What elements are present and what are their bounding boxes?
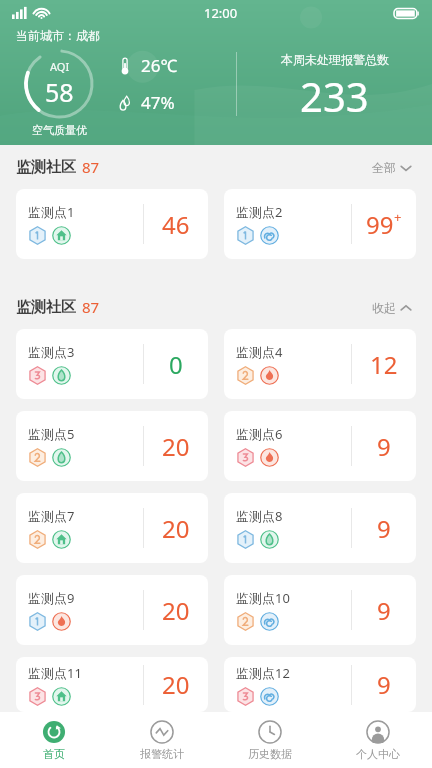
staticText: 12 <box>370 348 398 381</box>
staticText: 20 <box>162 668 190 701</box>
button[interactable]: 全部 <box>368 156 416 179</box>
button[interactable]: 个人中心 <box>324 712 432 768</box>
staticText: 20 <box>162 430 190 463</box>
staticText: + <box>394 208 402 226</box>
staticText: 20 <box>162 594 190 627</box>
button[interactable]: 监测点1 <box>16 189 208 259</box>
staticText: 监测点2 <box>236 203 283 221</box>
button[interactable]: 监测点6 <box>224 411 416 481</box>
button[interactable]: 报警统计 <box>108 712 216 768</box>
staticText: 47% <box>141 91 175 114</box>
staticText: 监测社区 <box>16 298 76 317</box>
button[interactable]: 监测点11 <box>16 657 208 712</box>
button[interactable]: 监测点5 <box>16 411 208 481</box>
staticText: 233 <box>300 69 369 123</box>
staticText: 9 <box>377 512 391 545</box>
staticText: 收起 <box>372 300 396 315</box>
staticText: 监测社区 <box>16 158 76 177</box>
staticText: 监测点12 <box>236 664 290 682</box>
staticText: 监测点7 <box>28 507 75 525</box>
staticText: 报警统计 <box>140 747 184 761</box>
button[interactable]: 监测点3 <box>16 329 208 399</box>
staticText: 全部 <box>372 160 396 175</box>
staticText: 监测点9 <box>28 589 75 607</box>
button[interactable]: 历史数据 <box>216 712 324 768</box>
button[interactable]: 监测点4 <box>224 329 416 399</box>
staticText: 监测点4 <box>236 343 283 361</box>
staticText: 个人中心 <box>356 747 400 761</box>
staticText: 12:00 <box>204 4 238 22</box>
staticText: 本周未处理报警总数 <box>281 52 389 67</box>
staticText: 监测点10 <box>236 589 290 607</box>
staticText: 当前城市：成都 <box>16 28 100 43</box>
staticText: 监测点5 <box>28 425 75 443</box>
staticText: AQI <box>50 59 70 74</box>
staticText: 46 <box>162 208 190 241</box>
button[interactable]: 监测点12 <box>224 657 416 712</box>
staticText: 0 <box>169 348 183 381</box>
button[interactable]: 监测点9 <box>16 575 208 645</box>
staticText: 首页 <box>43 747 65 761</box>
staticText: 监测点1 <box>28 203 75 221</box>
button[interactable]: 监测点8 <box>224 493 416 563</box>
staticText: 9 <box>377 668 391 701</box>
staticText: 87 <box>82 157 100 177</box>
staticText: 9 <box>377 430 391 463</box>
button[interactable]: 监测点10 <box>224 575 416 645</box>
button[interactable]: 监测点2 <box>224 189 416 259</box>
staticText: 监测点11 <box>28 664 82 682</box>
staticText: 空气质量优 <box>32 123 87 137</box>
button[interactable]: 监测点7 <box>16 493 208 563</box>
staticText: 20 <box>162 512 190 545</box>
staticText: 99 <box>366 208 394 241</box>
button[interactable]: 首页 <box>0 712 108 768</box>
button[interactable]: 收起 <box>368 296 416 319</box>
staticText: 历史数据 <box>248 747 292 761</box>
staticText: 9 <box>377 594 391 627</box>
staticText: 26℃ <box>141 54 178 77</box>
staticText: 58 <box>45 75 74 109</box>
staticText: 监测点8 <box>236 507 283 525</box>
staticText: 87 <box>82 297 100 317</box>
staticText: 监测点3 <box>28 343 75 361</box>
staticText: 监测点6 <box>236 425 283 443</box>
